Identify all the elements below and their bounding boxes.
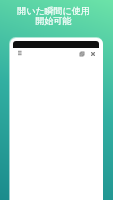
staticText: 開いた瞬間に使用 開始可能 xyxy=(17,5,90,27)
button[interactable]: Close xyxy=(87,46,99,58)
button[interactable]: Menu xyxy=(14,46,26,58)
button[interactable]: Tabs xyxy=(76,46,88,58)
